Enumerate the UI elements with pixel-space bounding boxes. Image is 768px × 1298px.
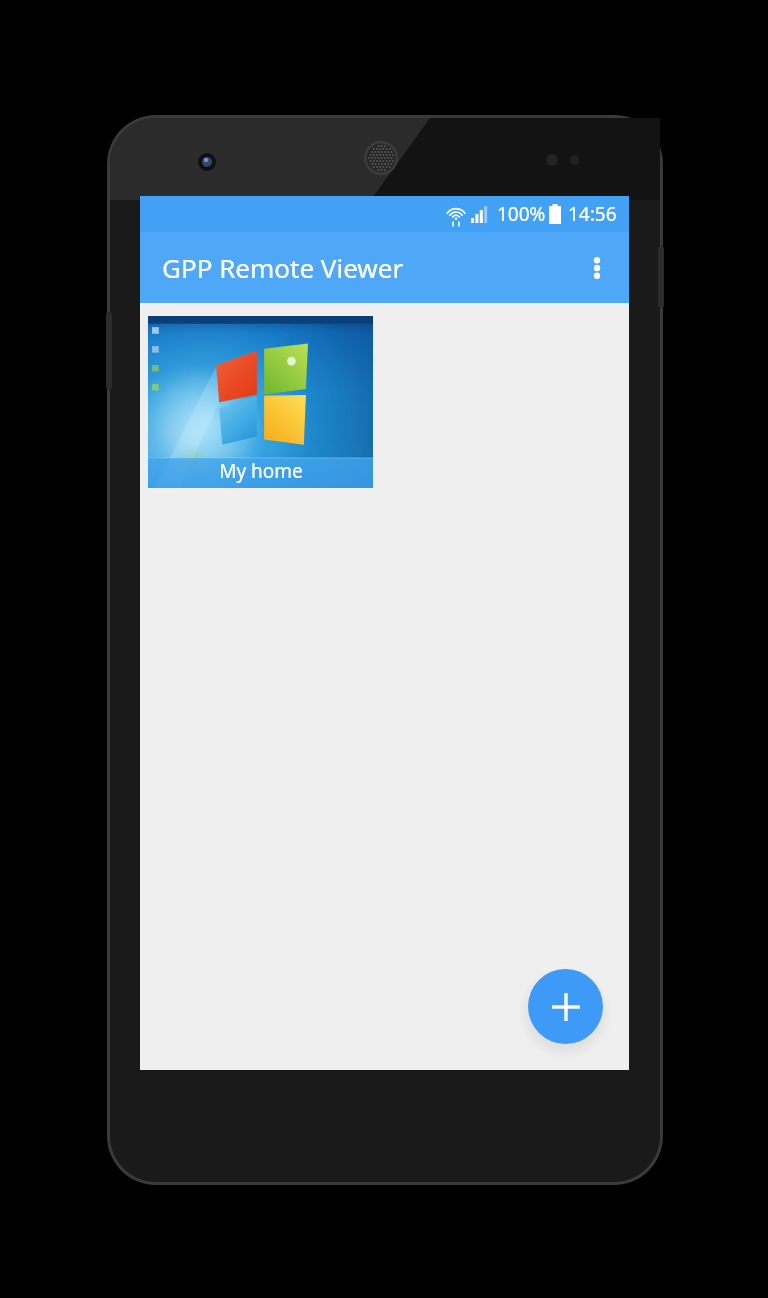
button[interactable]: Add xyxy=(528,969,603,1044)
staticText: 100% xyxy=(497,201,546,227)
staticText: GPP Remote Viewer xyxy=(162,250,404,285)
button[interactable]: My home xyxy=(148,316,373,488)
staticText: 14:56 xyxy=(568,201,617,227)
button[interactable]: More options xyxy=(573,244,621,292)
staticText: My home xyxy=(219,458,303,484)
